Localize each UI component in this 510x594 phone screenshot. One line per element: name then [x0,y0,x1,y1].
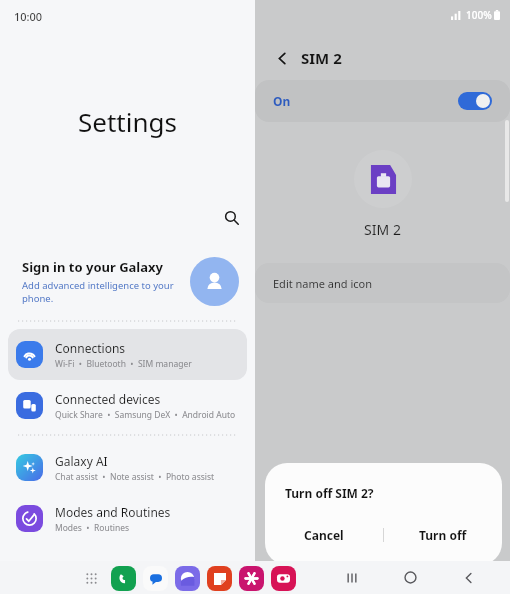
button[interactable]: Galaxy AI [0,442,255,493]
staticText: SIM 2 [255,220,510,239]
staticText: Wi-Fi • Bluetooth • SIM manager [55,358,192,370]
staticText: 100% [466,8,492,22]
button[interactable]: Messages [143,566,168,591]
button[interactable]: Turn off [384,517,502,553]
button[interactable]: Apps [78,565,104,591]
button[interactable]: Gallery [239,566,264,591]
staticText: Cancel [304,527,344,543]
staticText: Sign in to your Galaxy [22,258,163,276]
staticText: 10:00 [14,9,43,24]
staticText: Chat assist • Note assist • Photo assist [55,471,215,483]
staticText: Galaxy AI [55,453,108,469]
staticText: Turn off [419,527,467,543]
button[interactable]: Back [269,45,295,71]
button[interactable]: Connections [8,329,247,380]
button[interactable]: Sign in to your Galaxy [0,245,255,317]
button[interactable]: Cancel [265,517,383,553]
button[interactable]: On [255,80,510,122]
button[interactable]: Home [393,561,427,594]
button[interactable]: Notes [207,566,232,591]
button[interactable]: Internet [175,566,200,591]
staticText: On [273,93,291,109]
button[interactable]: Edit name and icon [255,263,510,303]
staticText: Settings [78,104,177,139]
staticText: Quick Share • Samsung DeX • Android Auto [55,409,236,421]
staticText: Modes • Routines [55,522,130,534]
button[interactable]: Phone [111,566,136,591]
button[interactable]: Connected devices [0,380,255,431]
staticText: Turn off SIM 2? [285,485,374,501]
button[interactable]: Camera [271,566,296,591]
staticText: Connected devices [55,391,161,407]
staticText: Connections [55,340,126,356]
button[interactable]: Back [452,561,486,594]
button[interactable]: Modes and Routines [0,493,255,544]
button[interactable]: Search [218,204,245,231]
staticText: SIM 2 [301,48,342,68]
staticText: Edit name and icon [273,276,373,291]
staticText: Add advanced intelligence to your phone. [22,279,174,305]
button[interactable]: Recents [335,561,369,594]
staticText: Modes and Routines [55,504,171,520]
